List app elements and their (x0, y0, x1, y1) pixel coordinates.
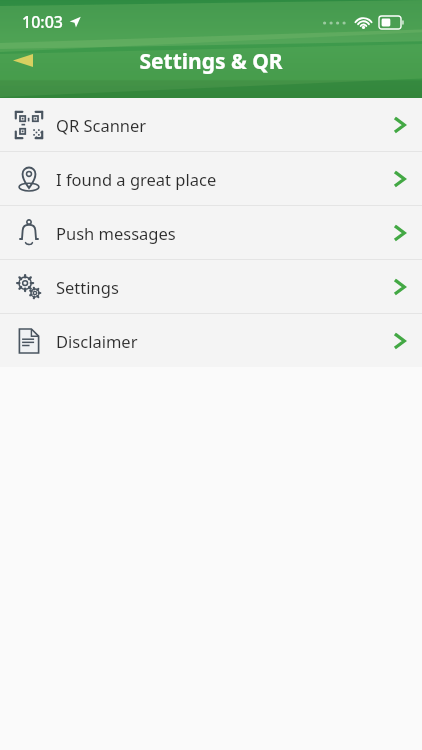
staticText: QR Scanner (56, 114, 147, 136)
button[interactable]: Disclaimer (0, 314, 422, 367)
staticText: 10:03 (22, 11, 63, 33)
staticText: Settings & QR (0, 47, 422, 76)
button[interactable]: Back (0, 37, 46, 83)
staticText: Push messages (56, 222, 176, 244)
staticText: I found a great place (56, 168, 217, 190)
button[interactable]: Push messages (0, 206, 422, 259)
button[interactable]: QR Scanner (0, 98, 422, 151)
staticText: Settings (56, 276, 119, 298)
staticText: Disclaimer (56, 330, 138, 352)
button[interactable]: I found a great place (0, 152, 422, 205)
button[interactable]: Settings (0, 260, 422, 313)
